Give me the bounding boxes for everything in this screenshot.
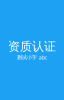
- staticText: 测试小字 abc: [16, 54, 47, 61]
- staticText: 资质认证: [8, 39, 56, 54]
